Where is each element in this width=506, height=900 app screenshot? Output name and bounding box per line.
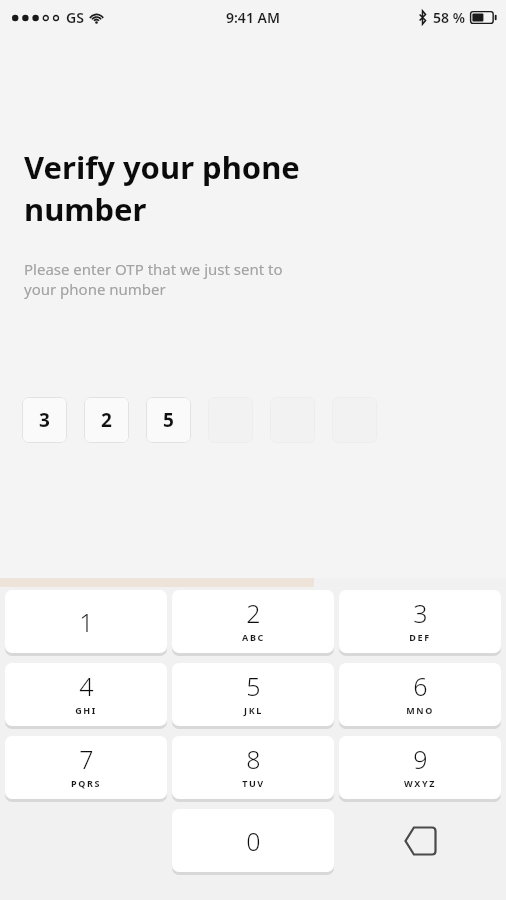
- staticText: GHI: [75, 704, 97, 716]
- staticText: GS: [66, 8, 84, 27]
- button[interactable]: 1: [5, 590, 167, 653]
- staticText: 2: [246, 596, 261, 630]
- staticText: 1: [79, 605, 94, 639]
- staticText: 3: [39, 407, 50, 433]
- button[interactable]: 6: [339, 663, 501, 726]
- staticText: MNO: [406, 704, 434, 716]
- staticText: Please enter OTP that we just sent to: [24, 259, 283, 279]
- staticText: number: [24, 188, 147, 230]
- staticText: 58 %: [433, 8, 465, 27]
- staticText: your phone number: [24, 279, 166, 299]
- staticText: 9:41 AM: [226, 8, 280, 27]
- staticText: 3: [413, 596, 428, 630]
- staticText: 2: [101, 407, 112, 433]
- staticText: Verify your phone: [24, 146, 300, 188]
- staticText: TUV: [242, 777, 265, 789]
- staticText: 6: [413, 669, 428, 703]
- staticText: 5: [246, 669, 261, 703]
- staticText: ABC: [242, 631, 265, 643]
- button[interactable]: 3: [339, 590, 501, 653]
- staticText: 4: [79, 669, 94, 703]
- staticText: WXYZ: [404, 777, 436, 789]
- staticText: 8: [246, 742, 261, 776]
- button[interactable]: 7: [5, 736, 167, 799]
- button[interactable]: 5: [172, 663, 334, 726]
- button[interactable]: 5: [146, 397, 191, 443]
- button[interactable]: 9: [339, 736, 501, 799]
- staticText: 9: [413, 742, 428, 776]
- staticText: JKL: [244, 704, 263, 716]
- button[interactable]: 8: [172, 736, 334, 799]
- button[interactable]: 3: [22, 397, 67, 443]
- staticText: PQRS: [71, 777, 101, 789]
- staticText: 7: [79, 742, 94, 776]
- staticText: 0: [246, 824, 261, 858]
- button[interactable]: 2: [172, 590, 334, 653]
- staticText: DEF: [409, 631, 431, 643]
- staticText: 5: [163, 407, 174, 433]
- button[interactable]: 2: [84, 397, 129, 443]
- button[interactable]: 0: [172, 809, 334, 872]
- button[interactable]: 4: [5, 663, 167, 726]
- button[interactable]: Backspace: [339, 809, 501, 873]
